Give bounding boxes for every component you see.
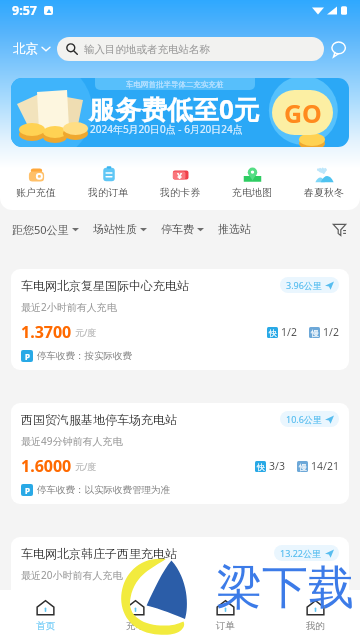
button[interactable]: Customer service chat	[327, 38, 349, 60]
staticText: 3/3	[269, 459, 285, 473]
button[interactable]: 距您50公里	[12, 218, 79, 241]
staticText: 账户充值	[16, 186, 56, 199]
staticText: 10.6公里	[286, 413, 322, 425]
staticText: 订单	[216, 620, 235, 632]
staticText: 停车费	[161, 222, 194, 236]
button[interactable]: 西国贸汽服基地停车场充电站	[11, 403, 349, 504]
staticText: 我的订单	[88, 186, 128, 199]
button[interactable]: Filter	[330, 220, 348, 238]
button[interactable]: 春夏秋冬	[288, 163, 360, 201]
staticText: 首页	[36, 620, 55, 632]
button[interactable]: 首页	[0, 590, 90, 640]
staticText: 慢	[311, 596, 319, 606]
button[interactable]: 推选站	[218, 218, 251, 240]
staticText: 2/4	[281, 593, 297, 607]
button[interactable]: 充电地图	[216, 163, 288, 201]
button[interactable]: 车电网北京韩庄子西里充电站	[11, 537, 349, 638]
staticText: 西国贸汽服基地停车场充电站	[21, 412, 177, 427]
staticText: 1/2	[323, 325, 339, 339]
staticText: P	[25, 485, 30, 496]
staticText: 快	[257, 462, 265, 472]
button[interactable]: 账户充值	[0, 163, 72, 201]
button[interactable]: ¥	[144, 163, 216, 201]
staticText: P	[25, 351, 30, 362]
staticText: 车电网北京复星国际中心充电站	[21, 278, 189, 293]
staticText: 3/8	[323, 593, 339, 607]
staticText: 推选站	[218, 222, 251, 236]
staticText: 最近2小时前有人充电	[21, 300, 117, 314]
staticText: 服务费低至0元	[89, 91, 260, 127]
staticText: 快	[269, 328, 277, 338]
staticText: 我的	[306, 620, 325, 632]
staticText: 最近20小时前有人充电	[21, 568, 123, 582]
staticText: 春夏秋冬	[304, 186, 344, 199]
button[interactable]: 我的订单	[72, 163, 144, 201]
staticText: 1.6000	[21, 455, 72, 477]
staticText: 充电	[126, 620, 145, 632]
button[interactable]: 场站性质	[93, 218, 147, 240]
staticText: ¥	[177, 169, 183, 181]
staticText: 元/度	[75, 460, 97, 472]
button[interactable]: 输入目的地或者充电站名称	[57, 37, 324, 61]
staticText: 车电网首批半导体二充实充桩	[126, 80, 224, 89]
staticText: 慢	[311, 328, 319, 338]
staticText: 停车收费：按实际收费	[37, 350, 132, 362]
button[interactable]: 充电	[90, 590, 180, 640]
button[interactable]: 停车费	[161, 218, 204, 240]
button[interactable]: 车电网北京复星国际中心充电站	[11, 269, 349, 370]
button[interactable]: 我的	[270, 590, 360, 640]
staticText: 慢	[299, 462, 307, 472]
staticText: 停车收费：以实际收费管理为准	[37, 484, 170, 496]
staticText: 2024年5月20日0点 - 6月20日24点	[90, 122, 243, 136]
staticText: 停车收费：按实际收费	[37, 618, 132, 630]
button[interactable]: 车电网首批半导体二充实充桩	[11, 78, 349, 147]
staticText: 1.3700	[21, 321, 72, 343]
staticText: 场站性质	[93, 222, 137, 236]
staticText: 北京	[13, 41, 38, 57]
staticText: GO	[284, 96, 322, 130]
staticText: 13.22公里	[280, 547, 322, 559]
staticText: 梁下载	[216, 559, 354, 617]
button[interactable]: 北京	[0, 23, 57, 75]
staticText: 1.4000	[21, 589, 72, 611]
staticText: 3.96公里	[286, 279, 322, 291]
staticText: 车电网北京韩庄子西里充电站	[21, 546, 177, 561]
staticText: 充电地图	[232, 186, 272, 199]
staticText: 元/度	[75, 326, 97, 338]
button[interactable]: 订单	[180, 590, 270, 640]
staticText: 我的卡券	[160, 186, 200, 199]
staticText: 9:57	[12, 2, 37, 19]
staticText: 距您50公里	[12, 222, 69, 237]
staticText: 最近49分钟前有人充电	[21, 434, 123, 448]
staticText: 14/21	[311, 459, 339, 473]
staticText: 1/2	[281, 325, 297, 339]
staticText: 输入目的地或者充电站名称	[84, 43, 210, 56]
